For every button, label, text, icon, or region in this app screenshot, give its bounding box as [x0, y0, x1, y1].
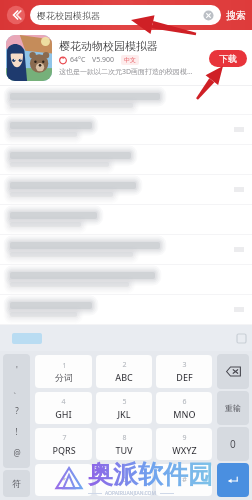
- staticText: 5: [122, 397, 127, 407]
- staticText: ?: [15, 405, 19, 416]
- button[interactable]: 9: [156, 428, 212, 460]
- button[interactable]: 7: [35, 428, 92, 460]
- staticText: #: [182, 475, 187, 485]
- staticText: V5.900: [92, 55, 115, 65]
- staticText: AOPAIRUANJIAN.COM: [105, 490, 157, 497]
- staticText: 2: [122, 360, 127, 370]
- staticText: WXYZ: [172, 444, 197, 456]
- button[interactable]: 1: [35, 355, 92, 388]
- staticText: DEF: [176, 371, 193, 383]
- staticText: *: [62, 475, 66, 485]
- staticText: !: [15, 426, 18, 437]
- staticText: JKL: [117, 408, 131, 420]
- staticText: @: [13, 447, 21, 458]
- staticText: 樱花动物校园模拟器: [59, 39, 158, 53]
- staticText: 下载: [219, 53, 237, 64]
- staticText: 4: [61, 397, 66, 407]
- staticText: 分词: [55, 372, 73, 383]
- button[interactable]: Enter: [217, 463, 249, 497]
- button[interactable]: 4: [35, 392, 92, 424]
- button[interactable]: 5: [96, 392, 152, 424]
- staticText: 、: [13, 385, 21, 395]
- staticText: 7: [62, 433, 67, 443]
- staticText: 奥派软件园: [88, 459, 213, 490]
- staticText: ABC: [115, 371, 133, 383]
- staticText: 樱花校园模拟器: [37, 10, 203, 21]
- staticText: 0: [230, 437, 236, 451]
- button[interactable]: #: [156, 464, 212, 496]
- staticText: 6: [182, 397, 187, 407]
- staticText: ': [16, 364, 18, 375]
- button[interactable]: 搜索: [225, 9, 247, 22]
- button[interactable]: 樱花动物校园模拟器: [6, 34, 247, 82]
- staticText: 64°C: [70, 55, 86, 65]
- button[interactable]: 3: [156, 355, 212, 388]
- staticText: MNO: [173, 408, 196, 420]
- button[interactable]: 8: [96, 428, 152, 460]
- staticText: 3: [182, 360, 187, 370]
- button[interactable]: Back: [5, 4, 27, 26]
- staticText: 符: [12, 478, 21, 489]
- staticText: 1: [62, 361, 67, 371]
- staticText: 搜索: [226, 9, 246, 22]
- button[interactable]: Backspace: [217, 354, 249, 389]
- button[interactable]: 0: [217, 427, 249, 461]
- button[interactable]: 樱花校园模拟器: [30, 5, 221, 25]
- staticText: 这也是一款以二次元3D画面打造的校园模…: [59, 67, 193, 77]
- button[interactable]: 6: [156, 392, 212, 424]
- staticText: 8: [122, 433, 127, 443]
- button[interactable]: Clear: [203, 10, 214, 21]
- staticText: 0: [122, 475, 127, 485]
- button[interactable]: ': [3, 354, 30, 468]
- staticText: 重输: [225, 403, 241, 413]
- button[interactable]: 下载: [209, 50, 247, 67]
- button[interactable]: 重输: [217, 391, 249, 425]
- button[interactable]: 符: [3, 470, 30, 497]
- button[interactable]: *: [35, 464, 92, 496]
- button[interactable]: 2: [96, 355, 152, 388]
- staticText: 9: [182, 433, 187, 443]
- staticText: 中文: [124, 56, 136, 64]
- button[interactable]: [12, 333, 42, 344]
- button[interactable]: Keyboard settings: [237, 334, 246, 343]
- staticText: GHI: [55, 408, 72, 420]
- staticText: PQRS: [52, 444, 76, 456]
- staticText: TUV: [115, 444, 133, 456]
- button[interactable]: 0: [96, 464, 152, 496]
